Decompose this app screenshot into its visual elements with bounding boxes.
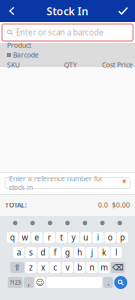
staticText: r [48, 232, 51, 243]
button[interactable]: b [74, 262, 85, 273]
staticText: a [17, 247, 21, 258]
button[interactable]: y [68, 232, 79, 243]
staticText: SKU [7, 60, 20, 69]
button[interactable]: e [31, 232, 43, 243]
button[interactable]: g [62, 247, 73, 258]
staticText: ⌫ [112, 263, 123, 272]
button[interactable]: Search [114, 276, 127, 289]
button[interactable]: t [56, 232, 67, 243]
button[interactable]: d [38, 247, 49, 258]
button[interactable]: . [103, 277, 113, 288]
staticText: . [107, 277, 109, 288]
button[interactable]: Back [0, 0, 24, 22]
staticText: l [115, 247, 117, 258]
staticText: v [65, 262, 69, 273]
button[interactable]: s [25, 247, 36, 258]
staticText: TOTAL: [5, 201, 27, 209]
button[interactable]: Done [111, 0, 135, 22]
button[interactable]: f [50, 247, 61, 258]
staticText: y [72, 232, 76, 243]
button[interactable]: h [74, 247, 85, 258]
staticText: p [120, 232, 125, 243]
button[interactable]: ?123 [8, 277, 23, 288]
button[interactable]: n [86, 262, 97, 273]
button[interactable]: u [80, 232, 91, 243]
staticText: ☺ [36, 278, 44, 287]
staticText: 0.0 [98, 201, 108, 209]
button[interactable]: l [111, 247, 122, 258]
staticText: w [22, 232, 28, 243]
staticText: g [65, 247, 70, 258]
button[interactable]: c [50, 262, 61, 273]
staticText: m [101, 262, 108, 273]
button[interactable]: , [24, 277, 34, 288]
button[interactable]: z [25, 262, 36, 273]
button[interactable]: Shift [10, 262, 24, 273]
button[interactable]: j [86, 247, 97, 258]
staticText: Product [7, 41, 31, 50]
staticText: d [41, 247, 46, 258]
staticText: , [28, 277, 30, 288]
staticText: i [97, 232, 99, 243]
staticText: h [77, 247, 82, 258]
staticText: Barcode [13, 51, 39, 59]
staticText: Enter a reference number for stock-in [9, 174, 103, 192]
staticText: c [53, 262, 57, 273]
staticText [71, 267, 77, 297]
staticText: ⇧ [14, 263, 21, 272]
staticText: ?123 [10, 279, 21, 286]
button[interactable]: q [7, 232, 18, 243]
staticText: n [89, 262, 94, 273]
staticText: * [122, 178, 126, 188]
staticText: t [60, 232, 63, 243]
staticText: b [77, 262, 82, 273]
button[interactable]: i [92, 232, 104, 243]
button[interactable]: o [105, 232, 116, 243]
staticText: f [54, 247, 57, 258]
button[interactable]: r [44, 232, 55, 243]
staticText: u [83, 232, 88, 243]
staticText: $0.00 [112, 201, 130, 209]
staticText: o [108, 232, 113, 243]
staticText: Enter or scan a barcode [16, 27, 104, 38]
button[interactable]: m [99, 262, 110, 273]
staticText: q [10, 232, 15, 243]
staticText: s [29, 247, 33, 258]
staticText: k [102, 247, 106, 258]
button[interactable]: a [13, 247, 24, 258]
staticText: Stock In [46, 4, 88, 18]
button[interactable]: w [19, 232, 30, 243]
staticText: QTY [64, 60, 77, 69]
staticText: z [29, 262, 33, 273]
button[interactable]: p [117, 232, 128, 243]
staticText: x [41, 262, 45, 273]
button[interactable]: k [99, 247, 110, 258]
button[interactable]: Emoji [35, 277, 45, 288]
button[interactable]: x [38, 262, 49, 273]
button[interactable]: v [62, 262, 73, 273]
button[interactable]: Delete [111, 262, 125, 273]
staticText: e [34, 232, 39, 243]
staticText: j [91, 247, 93, 258]
staticText: Cost Price [102, 60, 133, 69]
